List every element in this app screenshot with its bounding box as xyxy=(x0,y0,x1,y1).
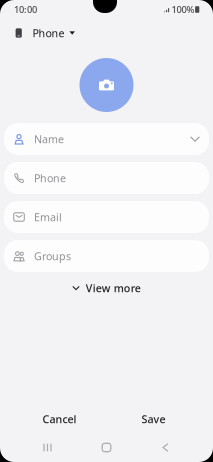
button[interactable]: Cancel xyxy=(12,405,106,433)
button[interactable]: Phone xyxy=(4,162,209,194)
staticText: Name xyxy=(34,132,64,146)
staticText: Groups xyxy=(34,249,71,263)
button[interactable]: Email xyxy=(4,201,209,233)
button[interactable]: Save xyxy=(106,405,200,433)
staticText: Cancel xyxy=(42,412,76,426)
staticText: 10:00 xyxy=(14,3,37,16)
button[interactable]: Groups xyxy=(4,240,209,272)
button[interactable]: Recent apps xyxy=(18,433,77,462)
button[interactable]: Name xyxy=(4,123,209,155)
staticText: View more xyxy=(86,281,141,295)
staticText: Save xyxy=(141,412,165,426)
staticText: Phone xyxy=(34,171,66,185)
button[interactable]: Phone xyxy=(0,22,85,44)
button[interactable]: Back xyxy=(136,433,195,462)
button[interactable]: Home xyxy=(77,433,136,462)
staticText: 100% xyxy=(171,3,194,16)
staticText: Email xyxy=(34,210,62,224)
button[interactable]: View more xyxy=(0,272,213,304)
staticText: Phone xyxy=(32,26,64,40)
